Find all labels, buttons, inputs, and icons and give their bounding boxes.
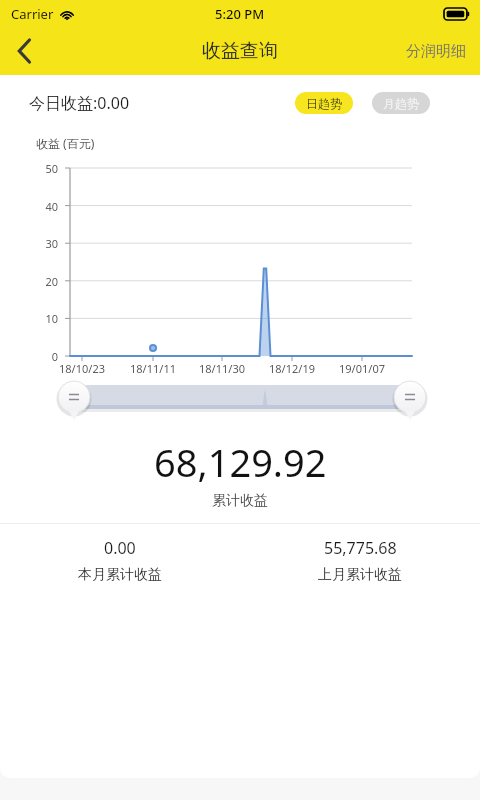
staticText: 日趋势 [306,96,342,111]
button[interactable]: Back [0,27,48,75]
staticText: 20 [0,274,58,289]
staticText: 55,775.68 [324,537,397,559]
button[interactable]: 55,775.68 [240,537,480,584]
staticText: 18/11/11 [122,361,184,375]
staticText: Carrier [11,5,54,23]
staticText: 收益 (百元) [36,135,95,151]
staticText: 40 [0,199,58,214]
staticText: 68,129.92 [154,436,327,488]
button[interactable]: 月趋势 [372,92,430,114]
staticText: 18/11/30 [191,361,253,375]
staticText: 累计收益 [212,492,268,510]
staticText: 19/01/07 [331,361,393,375]
staticText: 30 [0,236,58,251]
button[interactable]: 分润明细 [392,27,480,75]
staticText: 0.00 [104,537,136,559]
staticText: 今日收益:0.00 [29,92,130,114]
staticText: 18/12/19 [261,361,323,375]
button[interactable]: 0.00 [0,537,240,584]
staticText: 月趋势 [383,96,419,111]
staticText: 0 [0,349,58,364]
staticText: 收益查询 [202,39,278,63]
button[interactable]: 日趋势 [295,92,353,114]
staticText: 本月累计收益 [78,566,162,584]
staticText: 5:20 PM [215,5,265,23]
staticText: 50 [0,161,58,176]
staticText: 18/10/23 [51,361,113,375]
staticText: 10 [0,311,58,326]
staticText: 分润明细 [406,42,466,61]
staticText: 上月累计收益 [318,566,402,584]
